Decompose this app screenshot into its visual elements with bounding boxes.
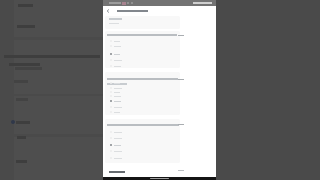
button[interactable] (108, 143, 176, 148)
button[interactable] (108, 156, 176, 161)
button[interactable] (108, 39, 176, 44)
button[interactable] (108, 81, 176, 86)
button[interactable] (108, 130, 176, 135)
button[interactable] (108, 99, 176, 104)
button[interactable] (108, 149, 176, 154)
button[interactable]: Back (104, 7, 112, 15)
button[interactable] (107, 168, 132, 175)
button[interactable] (108, 110, 176, 115)
button[interactable] (117, 7, 157, 15)
button[interactable] (108, 52, 176, 57)
button[interactable] (108, 58, 176, 63)
button[interactable] (108, 86, 176, 91)
button[interactable] (108, 94, 176, 99)
button[interactable] (108, 136, 176, 141)
button[interactable] (108, 64, 176, 69)
button[interactable] (108, 105, 176, 110)
button[interactable] (108, 44, 176, 49)
button[interactable] (108, 90, 176, 95)
